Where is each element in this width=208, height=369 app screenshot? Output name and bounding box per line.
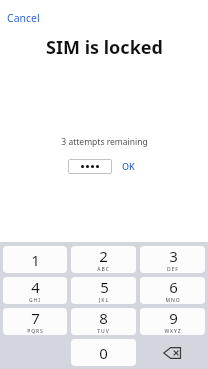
button[interactable]: Cancel (5, 9, 42, 27)
button[interactable]: 7 (3, 308, 67, 335)
button[interactable] (68, 159, 112, 174)
staticText: 3 (169, 246, 178, 266)
staticText: OK (122, 160, 135, 172)
staticText: 0 (99, 343, 108, 363)
staticText: TUV (97, 328, 110, 335)
staticText: 7 (31, 308, 40, 328)
button[interactable]: 6 (140, 277, 205, 304)
staticText: 3 attempts remaining (61, 136, 148, 148)
staticText: WXYZ (164, 328, 182, 335)
staticText: JKL (99, 297, 109, 304)
button[interactable]: 2 (71, 246, 136, 273)
staticText: 5 (100, 277, 109, 297)
staticText: ABC (97, 266, 110, 273)
staticText: PQRS (27, 328, 44, 335)
button[interactable]: 3 (140, 246, 205, 273)
button[interactable]: 5 (71, 277, 136, 304)
staticText: SIM is locked (46, 35, 163, 60)
staticText: 4 (31, 277, 40, 297)
staticText: Cancel (7, 11, 40, 25)
staticText: 1 (31, 250, 40, 270)
button[interactable]: 8 (71, 308, 136, 335)
staticText: GHI (29, 297, 41, 304)
button[interactable]: 0 (71, 339, 136, 366)
staticText: MNO (165, 297, 181, 304)
button[interactable]: Delete (140, 339, 205, 366)
button[interactable]: 1 (3, 246, 67, 273)
button[interactable]: 4 (3, 277, 67, 304)
staticText: 9 (169, 308, 178, 328)
staticText: DEF (167, 266, 179, 273)
button[interactable]: 9 (140, 308, 205, 335)
staticText: 2 (99, 246, 108, 266)
staticText: 8 (99, 308, 108, 328)
staticText: 6 (169, 277, 178, 297)
button[interactable]: OK (120, 158, 137, 174)
